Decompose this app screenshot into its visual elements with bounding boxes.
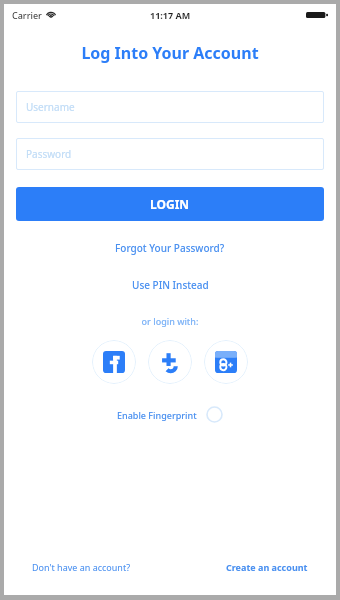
button[interactable]: Log in with Google Plus <box>204 340 248 384</box>
button[interactable]: Log in with Twitter <box>148 340 192 384</box>
staticText: or login with: <box>4 315 336 327</box>
button[interactable]: Enable Fingerprint <box>4 406 336 423</box>
staticText: Enable Fingerprint <box>117 409 197 421</box>
button[interactable]: LOGIN <box>16 187 324 221</box>
button[interactable]: Username <box>16 91 324 123</box>
staticText: Password <box>26 147 72 161</box>
staticText: LOGIN <box>150 196 190 212</box>
button[interactable]: Don't have an account? <box>32 561 131 573</box>
staticText: Forgot Your Password? <box>115 241 225 255</box>
staticText: Use PIN Instead <box>132 278 209 292</box>
button[interactable]: Use PIN Instead <box>4 278 336 292</box>
staticText: Don't have an account? <box>32 561 131 573</box>
staticText: Log Into Your Account <box>4 42 336 64</box>
button[interactable]: Create an account <box>226 561 308 573</box>
staticText: Username <box>26 100 75 114</box>
staticText: 11:17 AM <box>150 9 191 21</box>
staticText: Carrier <box>12 9 42 21</box>
button[interactable]: Log in with Facebook <box>92 340 136 384</box>
button[interactable]: Password <box>16 138 324 170</box>
staticText: Create an account <box>226 561 308 573</box>
button[interactable]: Forgot Your Password? <box>4 241 336 255</box>
